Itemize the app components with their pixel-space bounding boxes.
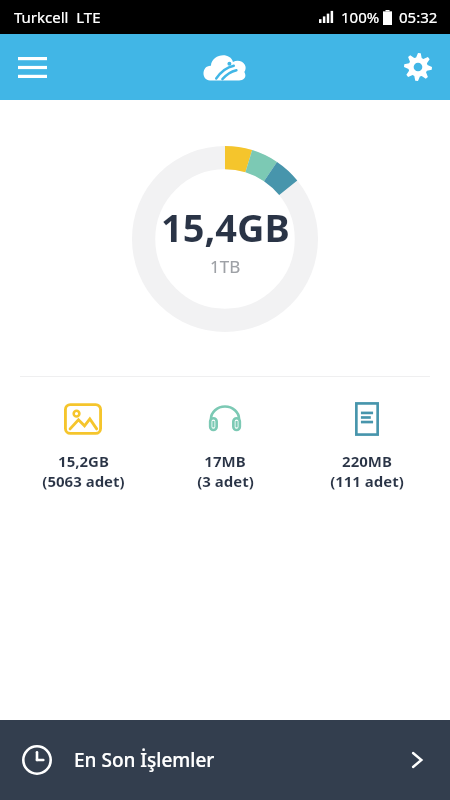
button[interactable]: 17MB (154, 393, 296, 495)
staticText: 15,4GB (161, 201, 290, 253)
staticText: (3 adet) (197, 471, 254, 491)
staticText: 220MB (342, 451, 392, 471)
staticText: 05:32 (399, 7, 438, 27)
button[interactable]: Settings (396, 45, 440, 89)
staticText: 1TB (210, 255, 241, 278)
button[interactable]: Menu (10, 45, 54, 89)
button[interactable]: En Son İşlemler (0, 720, 450, 800)
staticText: (111 adet) (330, 471, 404, 491)
staticText: (5063 adet) (42, 471, 125, 491)
staticText: Turkcell LTE (14, 7, 101, 27)
button[interactable]: 220MB (296, 393, 438, 495)
button[interactable]: 15,2GB (12, 393, 154, 495)
staticText: 17MB (204, 451, 246, 471)
staticText: 100% (341, 7, 380, 27)
staticText: En Son İşlemler (74, 747, 215, 773)
staticText: 15,2GB (58, 451, 109, 471)
